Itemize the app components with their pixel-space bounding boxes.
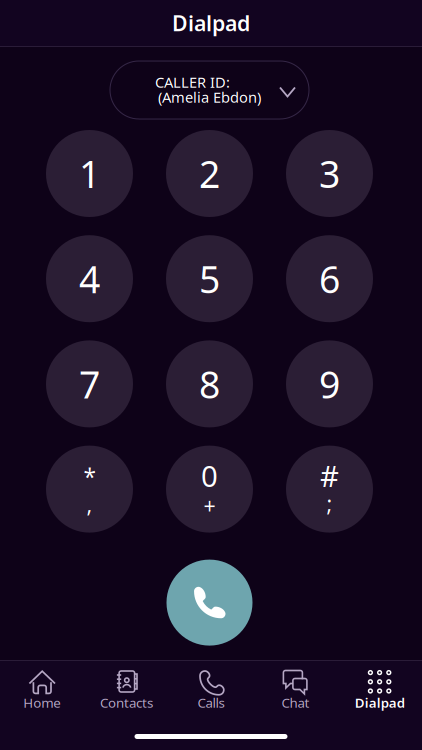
- button[interactable]: CALLER ID:: [110, 61, 309, 119]
- button[interactable]: 7: [46, 340, 133, 427]
- button[interactable]: Contacts: [84, 661, 169, 715]
- staticText: *: [83, 461, 95, 492]
- button[interactable]: Home: [0, 661, 84, 715]
- button[interactable]: 2: [166, 130, 253, 217]
- button[interactable]: 6: [286, 235, 373, 322]
- button[interactable]: Call: [166, 560, 252, 646]
- staticText: Chat: [281, 694, 309, 711]
- staticText: Dialpad: [172, 9, 250, 37]
- button[interactable]: 4: [46, 235, 133, 322]
- button[interactable]: *: [46, 446, 133, 533]
- staticText: (Amelia Ebdon): [158, 87, 261, 107]
- staticText: #: [320, 456, 339, 495]
- staticText: Home: [23, 694, 61, 711]
- button[interactable]: Dialpad: [338, 661, 422, 715]
- staticText: 4: [79, 254, 100, 303]
- staticText: +: [203, 491, 215, 519]
- button[interactable]: 5: [166, 235, 253, 322]
- button[interactable]: Chat: [253, 661, 338, 715]
- staticText: ,: [86, 490, 92, 518]
- button[interactable]: 9: [286, 340, 373, 427]
- button[interactable]: 0: [166, 446, 253, 533]
- staticText: 6: [319, 254, 340, 303]
- staticText: 3: [319, 149, 340, 198]
- staticText: 0: [201, 456, 218, 495]
- staticText: ;: [326, 489, 332, 517]
- button[interactable]: #: [286, 446, 373, 533]
- staticText: Contacts: [100, 694, 153, 711]
- staticText: 1: [79, 149, 100, 198]
- staticText: 8: [199, 359, 220, 409]
- staticText: 9: [319, 359, 340, 409]
- button[interactable]: 1: [46, 130, 133, 217]
- staticText: Dialpad: [355, 694, 405, 711]
- staticText: 5: [199, 254, 220, 303]
- button[interactable]: 8: [166, 340, 253, 427]
- staticText: 7: [79, 359, 100, 409]
- staticText: Calls: [197, 694, 224, 711]
- button[interactable]: 3: [286, 130, 373, 217]
- button[interactable]: Calls: [169, 661, 253, 715]
- staticText: CALLER ID:: [155, 72, 230, 92]
- staticText: 2: [199, 149, 220, 198]
